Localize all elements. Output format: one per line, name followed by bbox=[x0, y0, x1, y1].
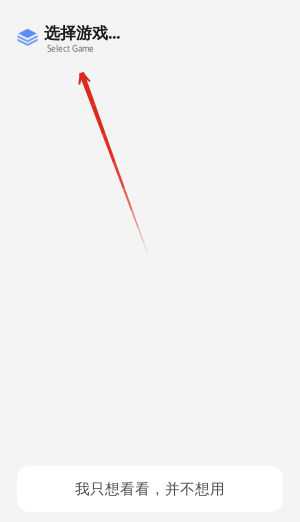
button[interactable]: 选择游戏... bbox=[0, 0, 300, 54]
staticText: Select Game bbox=[47, 43, 94, 54]
button[interactable]: 我只想看看，并不想用 bbox=[17, 466, 283, 512]
staticText: 我只想看看，并不想用 bbox=[75, 480, 225, 498]
staticText: 选择游戏... bbox=[44, 22, 120, 43]
